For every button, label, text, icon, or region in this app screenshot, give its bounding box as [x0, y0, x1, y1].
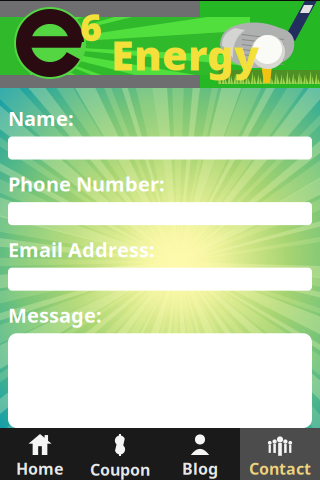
staticText: 6	[80, 2, 102, 52]
button[interactable]: Blog	[160, 428, 240, 480]
staticText: Home	[16, 458, 64, 479]
button[interactable]	[8, 137, 312, 160]
button[interactable]: Contact	[240, 428, 320, 480]
staticText: Email Address:	[8, 236, 155, 263]
staticText: Phone Number:	[8, 171, 165, 197]
button[interactable]: Coupon	[80, 428, 160, 480]
button[interactable]	[8, 202, 312, 225]
staticText: Message:	[8, 302, 102, 328]
staticText: Coupon	[90, 459, 150, 480]
staticText: Blog	[182, 458, 218, 479]
button[interactable]: Home	[0, 428, 80, 480]
staticText: Energy	[111, 27, 259, 82]
button[interactable]	[8, 268, 312, 291]
staticText: Contact	[249, 458, 311, 479]
staticText: Name:	[8, 105, 74, 132]
